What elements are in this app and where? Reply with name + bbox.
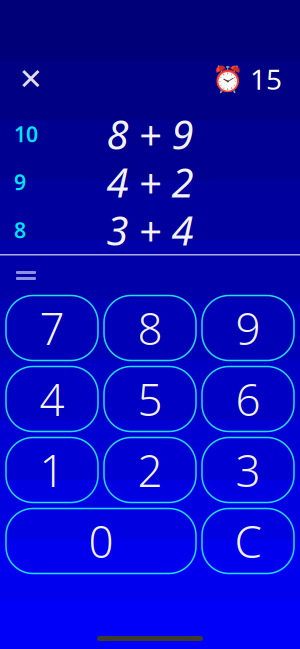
- button[interactable]: Close: [14, 62, 48, 96]
- button[interactable]: 8: [104, 295, 196, 360]
- button[interactable]: 5: [104, 366, 196, 431]
- staticText: 5: [137, 370, 162, 428]
- staticText: 3: [235, 441, 260, 499]
- button[interactable]: 3: [202, 437, 294, 502]
- button[interactable]: 0: [6, 508, 196, 573]
- staticText: 9: [14, 168, 26, 196]
- staticText: ✕: [18, 62, 43, 96]
- staticText: 7: [39, 299, 64, 357]
- staticText: 10: [14, 120, 38, 148]
- staticText: 15: [250, 60, 282, 98]
- button[interactable]: 6: [202, 366, 294, 431]
- staticText: 1: [39, 441, 64, 499]
- button[interactable]: C: [202, 508, 294, 573]
- button[interactable]: Timer, 15 seconds remaining: [208, 62, 286, 96]
- staticText: 4: [39, 370, 64, 428]
- button[interactable]: 4: [6, 366, 98, 431]
- staticText: 8: [14, 216, 26, 244]
- staticText: 8: [137, 299, 162, 357]
- staticText: 8 + 9: [106, 107, 193, 160]
- staticText: 0: [88, 512, 113, 570]
- button[interactable]: 2: [104, 437, 196, 502]
- button[interactable]: 9: [202, 295, 294, 360]
- staticText: C: [234, 512, 261, 570]
- staticText: 2: [137, 441, 162, 499]
- staticText: 6: [235, 370, 260, 428]
- button[interactable]: 1: [6, 437, 98, 502]
- staticText: ⏰: [212, 64, 244, 93]
- staticText: 3 + 4: [106, 203, 193, 256]
- staticText: 9: [235, 299, 260, 357]
- button[interactable]: 7: [6, 295, 98, 360]
- staticText: 4 + 2: [106, 155, 193, 208]
